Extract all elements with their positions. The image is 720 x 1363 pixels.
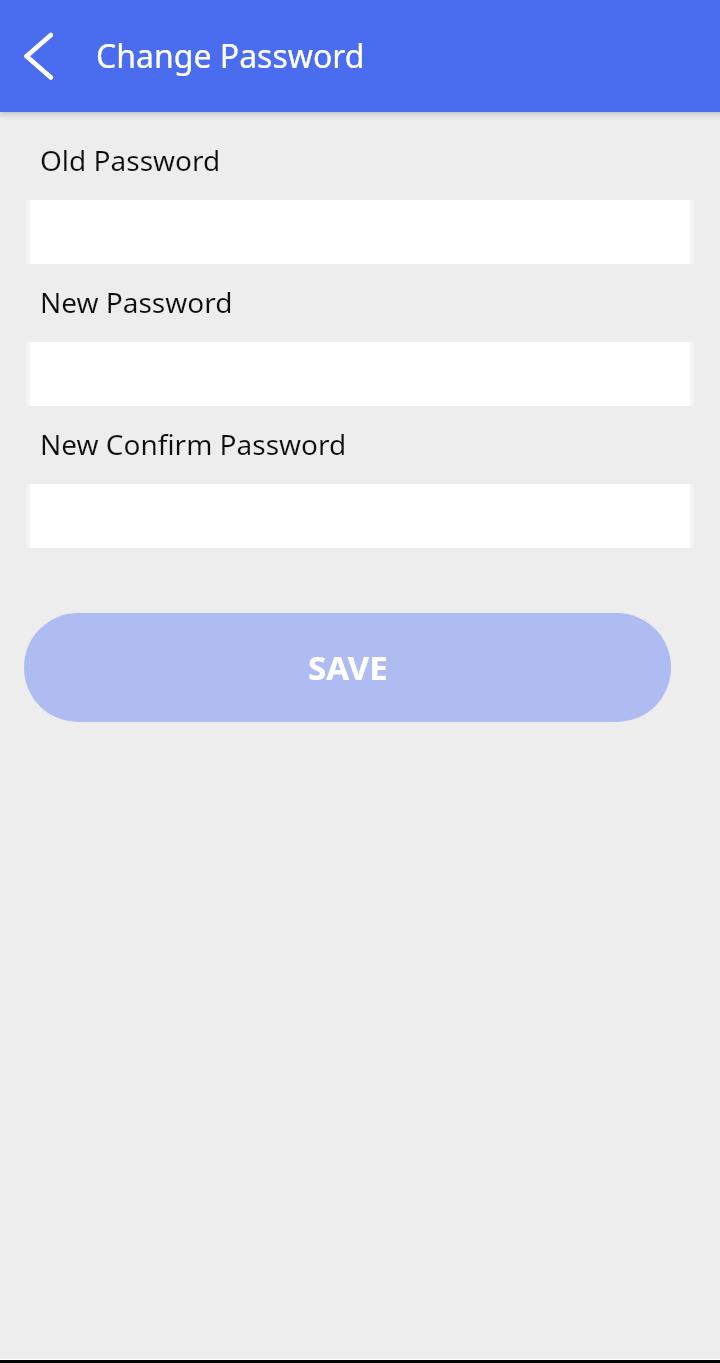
button[interactable]: SAVE	[24, 613, 671, 722]
staticText: Change Password	[96, 34, 365, 78]
button[interactable]: Back	[8, 24, 72, 88]
staticText: New Confirm Password	[40, 425, 347, 463]
staticText: Old Password	[40, 141, 221, 179]
staticText: New Password	[40, 283, 233, 321]
staticText: SAVE	[308, 645, 388, 690]
